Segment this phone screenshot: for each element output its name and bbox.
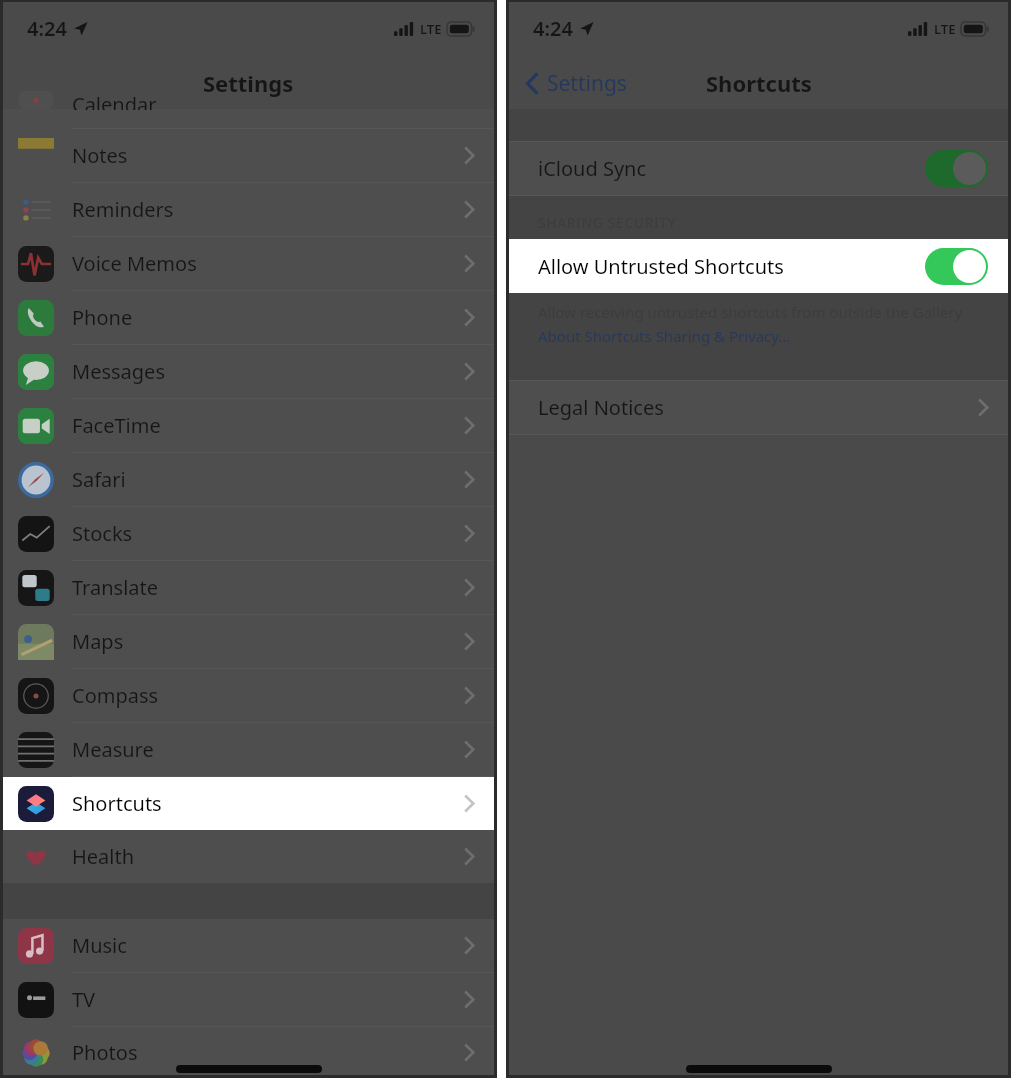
staticText: Reminders <box>72 196 463 223</box>
staticText: 4:24 <box>533 15 573 42</box>
button[interactable]: About Shortcuts Sharing & Privacy... <box>538 326 791 346</box>
staticText: LTE <box>934 20 956 38</box>
button[interactable]: Legal Notices <box>506 381 1011 434</box>
button[interactable]: Reminders <box>0 183 497 236</box>
button[interactable]: Settings <box>526 69 627 98</box>
staticText: Stocks <box>72 520 463 547</box>
staticText: Phone <box>72 304 463 331</box>
staticText: Messages <box>72 358 463 385</box>
button[interactable]: Maps <box>0 615 497 668</box>
staticText: iCloud Sync <box>538 155 925 182</box>
staticText: Shortcuts <box>706 68 812 98</box>
staticText: Allow Untrusted Shortcuts <box>538 253 925 280</box>
staticText: About Shortcuts Sharing & Privacy... <box>538 326 791 346</box>
staticText: LTE <box>420 20 442 38</box>
button[interactable]: Stocks <box>0 507 497 560</box>
staticText: Shortcuts <box>72 790 463 817</box>
button[interactable]: Shortcuts <box>0 777 497 830</box>
staticText: Safari <box>72 466 463 493</box>
button[interactable]: Notes <box>0 129 497 182</box>
button[interactable]: Allow Untrusted Shortcuts <box>506 239 1011 293</box>
staticText: Legal Notices <box>538 394 977 421</box>
staticText: Calendar <box>72 91 157 110</box>
button[interactable]: Measure <box>0 723 497 776</box>
staticText: Compass <box>72 682 463 709</box>
button[interactable]: iCloud Sync <box>506 142 1011 195</box>
staticText: Settings <box>547 69 627 98</box>
button[interactable]: TV <box>0 973 497 1026</box>
button[interactable]: Messages <box>0 345 497 398</box>
staticText: Measure <box>72 736 463 763</box>
staticText: TV <box>72 986 463 1013</box>
staticText: Photos <box>72 1039 463 1066</box>
button[interactable]: On <box>925 150 988 187</box>
staticText: Maps <box>72 628 463 655</box>
button[interactable]: Translate <box>0 561 497 614</box>
button[interactable]: Photos <box>0 1027 497 1078</box>
button[interactable]: Phone <box>0 291 497 344</box>
staticText: FaceTime <box>72 412 463 439</box>
staticText: Settings <box>203 68 294 98</box>
staticText: Voice Memos <box>72 250 463 277</box>
button[interactable]: Voice Memos <box>0 237 497 290</box>
staticText: Translate <box>72 574 463 601</box>
staticText: Health <box>72 843 463 870</box>
button[interactable]: Health <box>0 830 497 883</box>
staticText: Music <box>72 932 463 959</box>
button[interactable]: Compass <box>0 669 497 722</box>
button[interactable]: Safari <box>0 453 497 506</box>
button[interactable]: On <box>925 248 988 285</box>
staticText: 4:24 <box>27 15 67 42</box>
button[interactable]: Calendar <box>0 109 497 128</box>
button[interactable]: Music <box>0 919 497 972</box>
button[interactable]: FaceTime <box>0 399 497 452</box>
staticText: Notes <box>72 142 463 169</box>
